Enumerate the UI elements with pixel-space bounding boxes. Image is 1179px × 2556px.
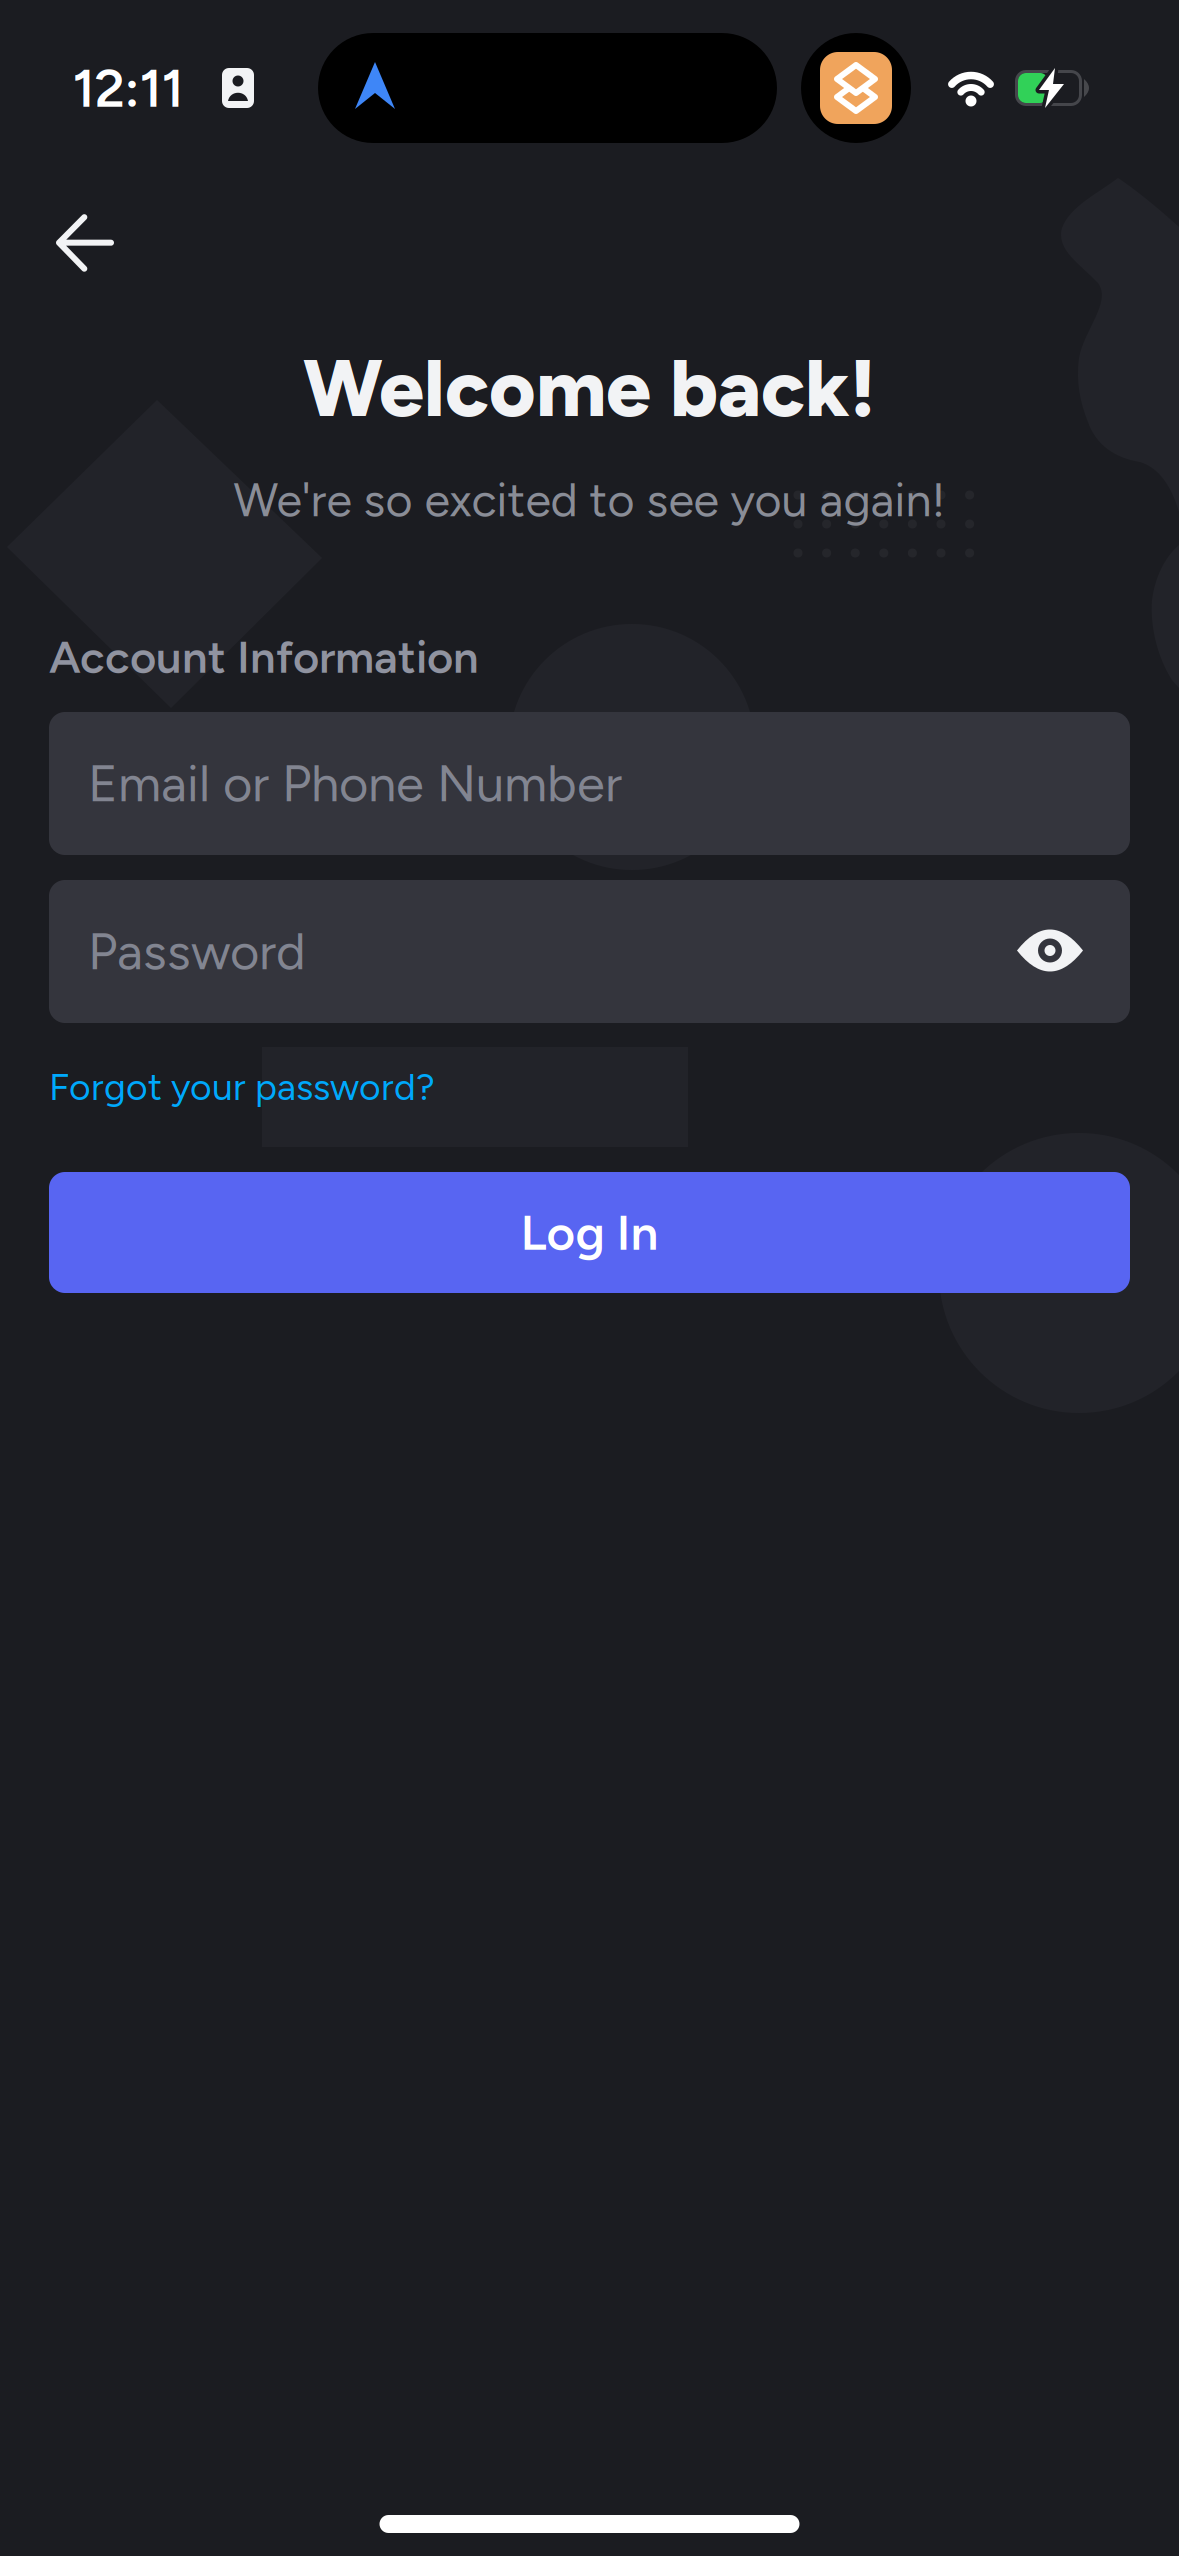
staticText: Welcome back! xyxy=(303,340,876,436)
staticText: 12:11 xyxy=(72,57,183,119)
button[interactable]: Log In xyxy=(49,1172,1130,1293)
staticText: We're so excited to see you again! xyxy=(233,473,945,527)
staticText: Account Information xyxy=(49,630,479,683)
staticText: Forgot your password? xyxy=(49,1065,435,1109)
staticText: Password xyxy=(88,922,306,981)
button[interactable]: Forgot your password? xyxy=(49,1065,435,1109)
button[interactable]: Email or Phone Number xyxy=(49,712,1130,855)
staticText: Email or Phone Number xyxy=(88,754,622,813)
button[interactable] xyxy=(24,182,144,302)
staticText: Log In xyxy=(520,1204,658,1261)
button[interactable]: Password xyxy=(49,880,1130,1023)
